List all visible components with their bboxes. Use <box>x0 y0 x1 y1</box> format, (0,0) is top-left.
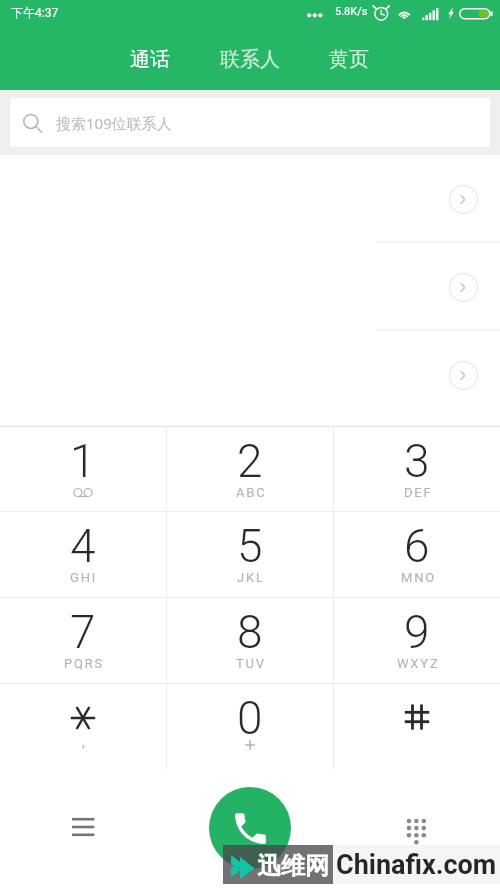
staticText: DEF <box>404 485 433 500</box>
staticText: 7 <box>70 605 96 659</box>
staticText: 通话 <box>130 47 170 72</box>
button[interactable]: , <box>0 684 166 769</box>
staticText: 9 <box>404 605 430 659</box>
button[interactable]: Menu <box>58 802 108 852</box>
staticText: PQRS <box>64 656 105 671</box>
staticText: 5.8K/s <box>335 5 368 18</box>
staticText: JKL <box>237 570 265 585</box>
staticText: 迅维网 <box>257 851 329 881</box>
staticText: Chinafix.com <box>336 849 497 881</box>
staticText: 4 <box>70 519 96 573</box>
staticText: 黄页 <box>329 47 369 72</box>
staticText: TUV <box>236 656 266 671</box>
button[interactable]: 4 <box>0 512 166 597</box>
staticText: 8 <box>237 605 263 659</box>
staticText: 2 <box>237 434 263 488</box>
button[interactable]: 1 <box>0 427 166 511</box>
staticText: 0 <box>237 691 263 745</box>
button[interactable]: 9 <box>334 598 500 683</box>
button[interactable]: Call details <box>449 361 478 390</box>
staticText: 3 <box>404 434 430 488</box>
staticText: , <box>82 734 85 750</box>
staticText: 联系人 <box>220 47 280 72</box>
staticText: 1 <box>70 434 96 488</box>
button[interactable]: 6 <box>334 512 500 597</box>
button[interactable]: 0 <box>167 684 333 769</box>
button[interactable]: 2 <box>167 427 333 511</box>
button[interactable]: Call <box>209 787 291 869</box>
button[interactable]: 3 <box>334 427 500 511</box>
button[interactable]: Dialpad <box>392 808 442 858</box>
button[interactable] <box>334 684 500 769</box>
staticText: 搜索109位联系人 <box>56 113 172 133</box>
staticText: WXYZ <box>397 656 440 671</box>
staticText: 6 <box>404 519 430 573</box>
staticText: ABC <box>236 485 267 500</box>
button[interactable]: 5 <box>167 512 333 597</box>
staticText: MNO <box>401 570 436 585</box>
button[interactable]: 7 <box>0 598 166 683</box>
button[interactable]: 联系人 <box>200 28 299 90</box>
staticText: 下午4:37 <box>11 5 59 20</box>
button[interactable]: 黄页 <box>299 28 398 90</box>
staticText: 5 <box>237 519 263 573</box>
button[interactable]: 搜索109位联系人 <box>10 98 490 147</box>
button[interactable]: 通话 <box>100 28 200 90</box>
button[interactable]: Call details <box>449 185 478 214</box>
staticText: GHI <box>70 570 98 585</box>
button[interactable]: Call details <box>449 273 478 302</box>
button[interactable]: 8 <box>167 598 333 683</box>
